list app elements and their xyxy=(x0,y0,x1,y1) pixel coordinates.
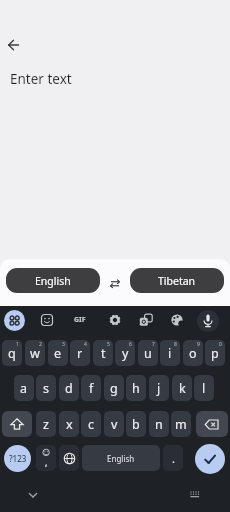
button[interactable] xyxy=(197,310,219,332)
staticText: i xyxy=(168,345,172,362)
staticText: 8 xyxy=(174,341,177,348)
staticText: s xyxy=(43,380,49,397)
button[interactable]: e xyxy=(48,340,68,366)
button[interactable]: English xyxy=(6,268,100,293)
button[interactable]: . xyxy=(163,445,183,471)
staticText: 6 xyxy=(129,341,132,348)
button[interactable] xyxy=(108,313,122,327)
staticText: c xyxy=(88,416,95,433)
staticText: 9 xyxy=(197,341,200,348)
staticText: n xyxy=(155,416,163,433)
button[interactable] xyxy=(4,310,25,331)
staticText: e xyxy=(54,345,62,362)
staticText: j xyxy=(157,380,161,397)
button[interactable]: , xyxy=(36,445,56,471)
button[interactable] xyxy=(6,37,22,53)
staticText: p xyxy=(211,345,219,362)
staticText: 1 xyxy=(16,341,19,348)
staticText: q xyxy=(8,345,16,362)
staticText: a xyxy=(20,380,28,397)
button[interactable]: p xyxy=(205,340,225,366)
staticText: k xyxy=(179,380,186,397)
button[interactable]: q xyxy=(2,340,22,366)
button[interactable]: u xyxy=(138,340,158,366)
button[interactable]: English xyxy=(82,445,160,471)
button[interactable]: d xyxy=(59,375,79,401)
staticText: 7 xyxy=(152,341,155,348)
button[interactable]: s xyxy=(36,375,56,401)
staticText: 3 xyxy=(62,341,65,348)
button[interactable]: y xyxy=(115,340,135,366)
button[interactable] xyxy=(187,487,203,503)
button[interactable]: w xyxy=(25,340,45,366)
staticText: v xyxy=(111,416,118,433)
staticText: x xyxy=(66,416,73,433)
button[interactable] xyxy=(139,313,153,327)
button[interactable] xyxy=(25,487,41,503)
button[interactable]: x xyxy=(59,411,79,437)
button[interactable] xyxy=(2,411,32,437)
staticText: d xyxy=(65,380,73,397)
staticText: English xyxy=(107,453,135,464)
button[interactable]: a xyxy=(14,375,34,401)
staticText: English xyxy=(35,274,71,288)
staticText: b xyxy=(132,416,140,433)
staticText: GIF xyxy=(74,315,86,325)
staticText: ?123 xyxy=(9,453,27,464)
staticText: 2 xyxy=(39,341,42,348)
button[interactable]: n xyxy=(149,411,169,437)
button[interactable]: i xyxy=(160,340,180,366)
button[interactable]: f xyxy=(81,375,101,401)
button[interactable]: m xyxy=(171,411,191,437)
button[interactable] xyxy=(107,276,123,292)
staticText: , xyxy=(45,456,48,468)
button[interactable]: g xyxy=(104,375,124,401)
staticText: Enter text xyxy=(10,70,72,88)
staticText: h xyxy=(132,380,140,397)
button[interactable]: b xyxy=(126,411,146,437)
button[interactable] xyxy=(195,444,225,474)
button[interactable] xyxy=(40,313,54,327)
staticText: u xyxy=(144,345,152,362)
staticText: Tibetan xyxy=(158,274,196,288)
button[interactable] xyxy=(59,445,79,471)
button[interactable]: v xyxy=(104,411,124,437)
staticText: 5 xyxy=(107,341,110,348)
staticText: z xyxy=(43,416,49,433)
button[interactable]: j xyxy=(149,375,169,401)
staticText: 4 xyxy=(84,341,87,348)
button[interactable]: c xyxy=(81,411,101,437)
staticText: f xyxy=(89,380,94,397)
staticText: 0 xyxy=(219,341,222,348)
staticText: y xyxy=(122,345,129,362)
button[interactable]: h xyxy=(126,375,146,401)
button[interactable]: l xyxy=(194,375,214,401)
staticText: g xyxy=(110,380,118,397)
staticText: r xyxy=(77,345,83,362)
button[interactable]: k xyxy=(172,375,192,401)
button[interactable]: o xyxy=(183,340,203,366)
button[interactable]: t xyxy=(93,340,113,366)
staticText: m xyxy=(175,416,187,433)
button[interactable]: ?123 xyxy=(4,445,31,472)
button[interactable] xyxy=(196,411,228,437)
button[interactable]: Tibetan xyxy=(130,268,224,293)
staticText: t xyxy=(101,345,106,362)
button[interactable] xyxy=(170,313,184,327)
button[interactable]: r xyxy=(70,340,90,366)
button[interactable]: GIF xyxy=(70,312,90,328)
button[interactable]: z xyxy=(36,411,56,437)
staticText: l xyxy=(202,380,206,397)
staticText: w xyxy=(30,345,40,362)
staticText: o xyxy=(189,345,197,362)
staticText: . xyxy=(172,451,175,466)
